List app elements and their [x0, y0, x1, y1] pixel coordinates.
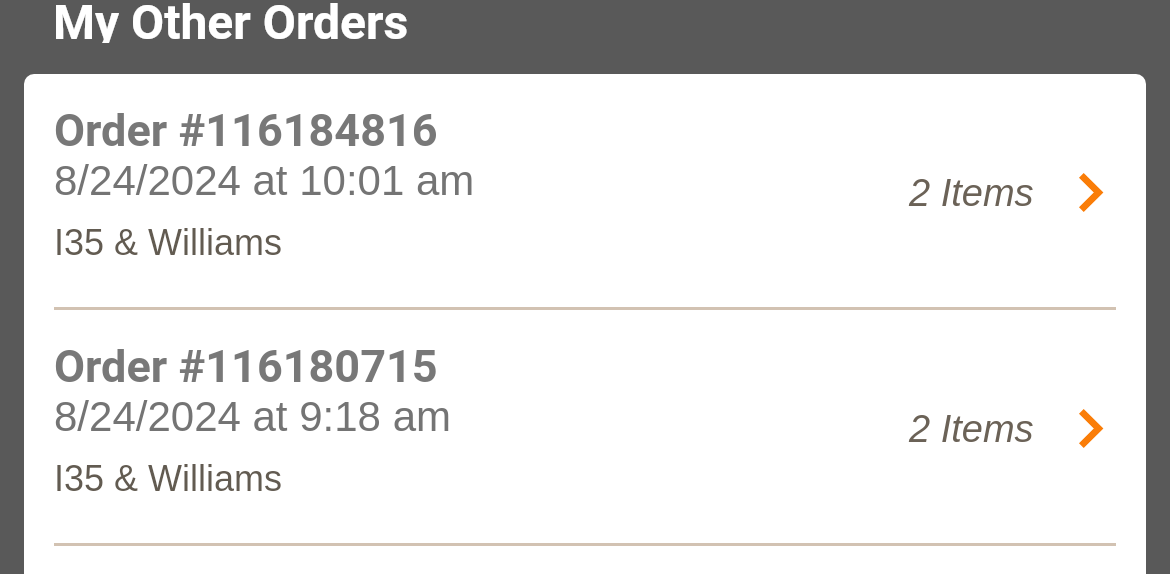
staticText: Order #116184816 [54, 104, 438, 157]
staticText: I35 & Williams [54, 458, 283, 498]
staticText: Order #116180715 [54, 340, 438, 393]
button[interactable]: Order #116184816 [24, 74, 1146, 307]
staticText: I35 & Williams [54, 222, 283, 262]
button[interactable]: Order #116180715 [24, 310, 1146, 543]
button[interactable]: View order details [1077, 407, 1102, 450]
staticText: 2 Items [909, 408, 1034, 450]
staticText: My Other Orders [53, 0, 409, 43]
staticText: 8/24/2024 at 10:01 am [54, 157, 475, 204]
staticText: 2 Items [909, 172, 1034, 214]
staticText: 8/24/2024 at 9:18 am [54, 393, 451, 440]
button[interactable]: View order details [1077, 171, 1102, 214]
